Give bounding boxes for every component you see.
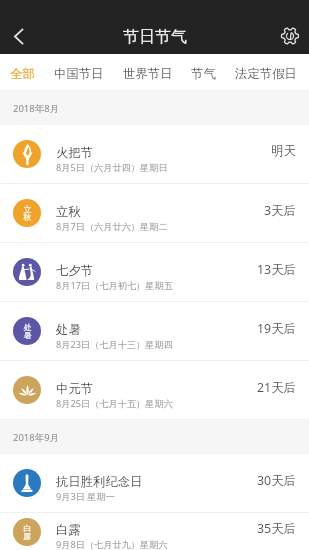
button[interactable]: 法定节假日	[231, 57, 301, 87]
staticText: 中元节	[56, 381, 94, 397]
button[interactable]: 世界节日	[119, 57, 177, 87]
staticText: 8月17日（七月初七）星期五	[56, 279, 173, 292]
staticText: 8月7日（六月廿六）星期二	[56, 220, 168, 233]
button[interactable]: 立秋	[0, 184, 309, 243]
staticText: 白露	[56, 522, 81, 538]
staticText: 21天后	[257, 379, 296, 396]
staticText: 节气	[191, 66, 216, 82]
button[interactable]: 全部	[6, 57, 39, 87]
staticText: 七夕节	[56, 263, 94, 279]
staticText: 3天后	[264, 202, 296, 219]
staticText: 火把节	[56, 145, 94, 161]
button[interactable]: 七夕节	[0, 243, 309, 302]
staticText: 中国节日	[54, 66, 104, 82]
staticText: 法定节假日	[235, 66, 297, 82]
staticText: 8月5日（六月廿四）星期日	[56, 161, 168, 174]
staticText: 处暑	[56, 322, 81, 338]
staticText: 2018年9月	[13, 431, 60, 444]
staticText: 明天	[271, 143, 296, 159]
button[interactable]: 中元节	[0, 361, 309, 420]
staticText: 19天后	[257, 320, 296, 337]
staticText: 全部	[10, 66, 35, 82]
staticText: 白露	[23, 523, 32, 542]
staticText: 30天后	[257, 472, 296, 489]
staticText: 8月23日（七月十三）星期四	[56, 338, 173, 351]
staticText: 8月25日（七月十五）星期六	[56, 397, 173, 410]
button[interactable]: Back	[0, 18, 38, 54]
staticText: 世界节日	[123, 66, 173, 82]
staticText: 2018年8月	[13, 102, 60, 115]
staticText: 9月3日 星期一	[56, 490, 115, 503]
staticText: 13天后	[257, 261, 296, 278]
staticText: 节日节气	[123, 27, 187, 47]
button[interactable]: 火把节	[0, 125, 309, 184]
staticText: 抗日胜利纪念日	[56, 474, 143, 490]
staticText: 立秋	[56, 204, 81, 220]
button[interactable]: 节气	[187, 57, 220, 87]
staticText: 处暑	[23, 322, 32, 341]
staticText: 35天后	[257, 520, 296, 537]
button[interactable]: Settings	[270, 18, 309, 54]
staticText: 9月8日（七月廿九）星期六	[56, 538, 168, 550]
button[interactable]: 中国节日	[50, 57, 108, 87]
button[interactable]: 处暑	[0, 302, 309, 361]
staticText: 立秋	[23, 204, 32, 223]
button[interactable]: 白露	[0, 513, 309, 550]
button[interactable]: 抗日胜利纪念日	[0, 454, 309, 513]
